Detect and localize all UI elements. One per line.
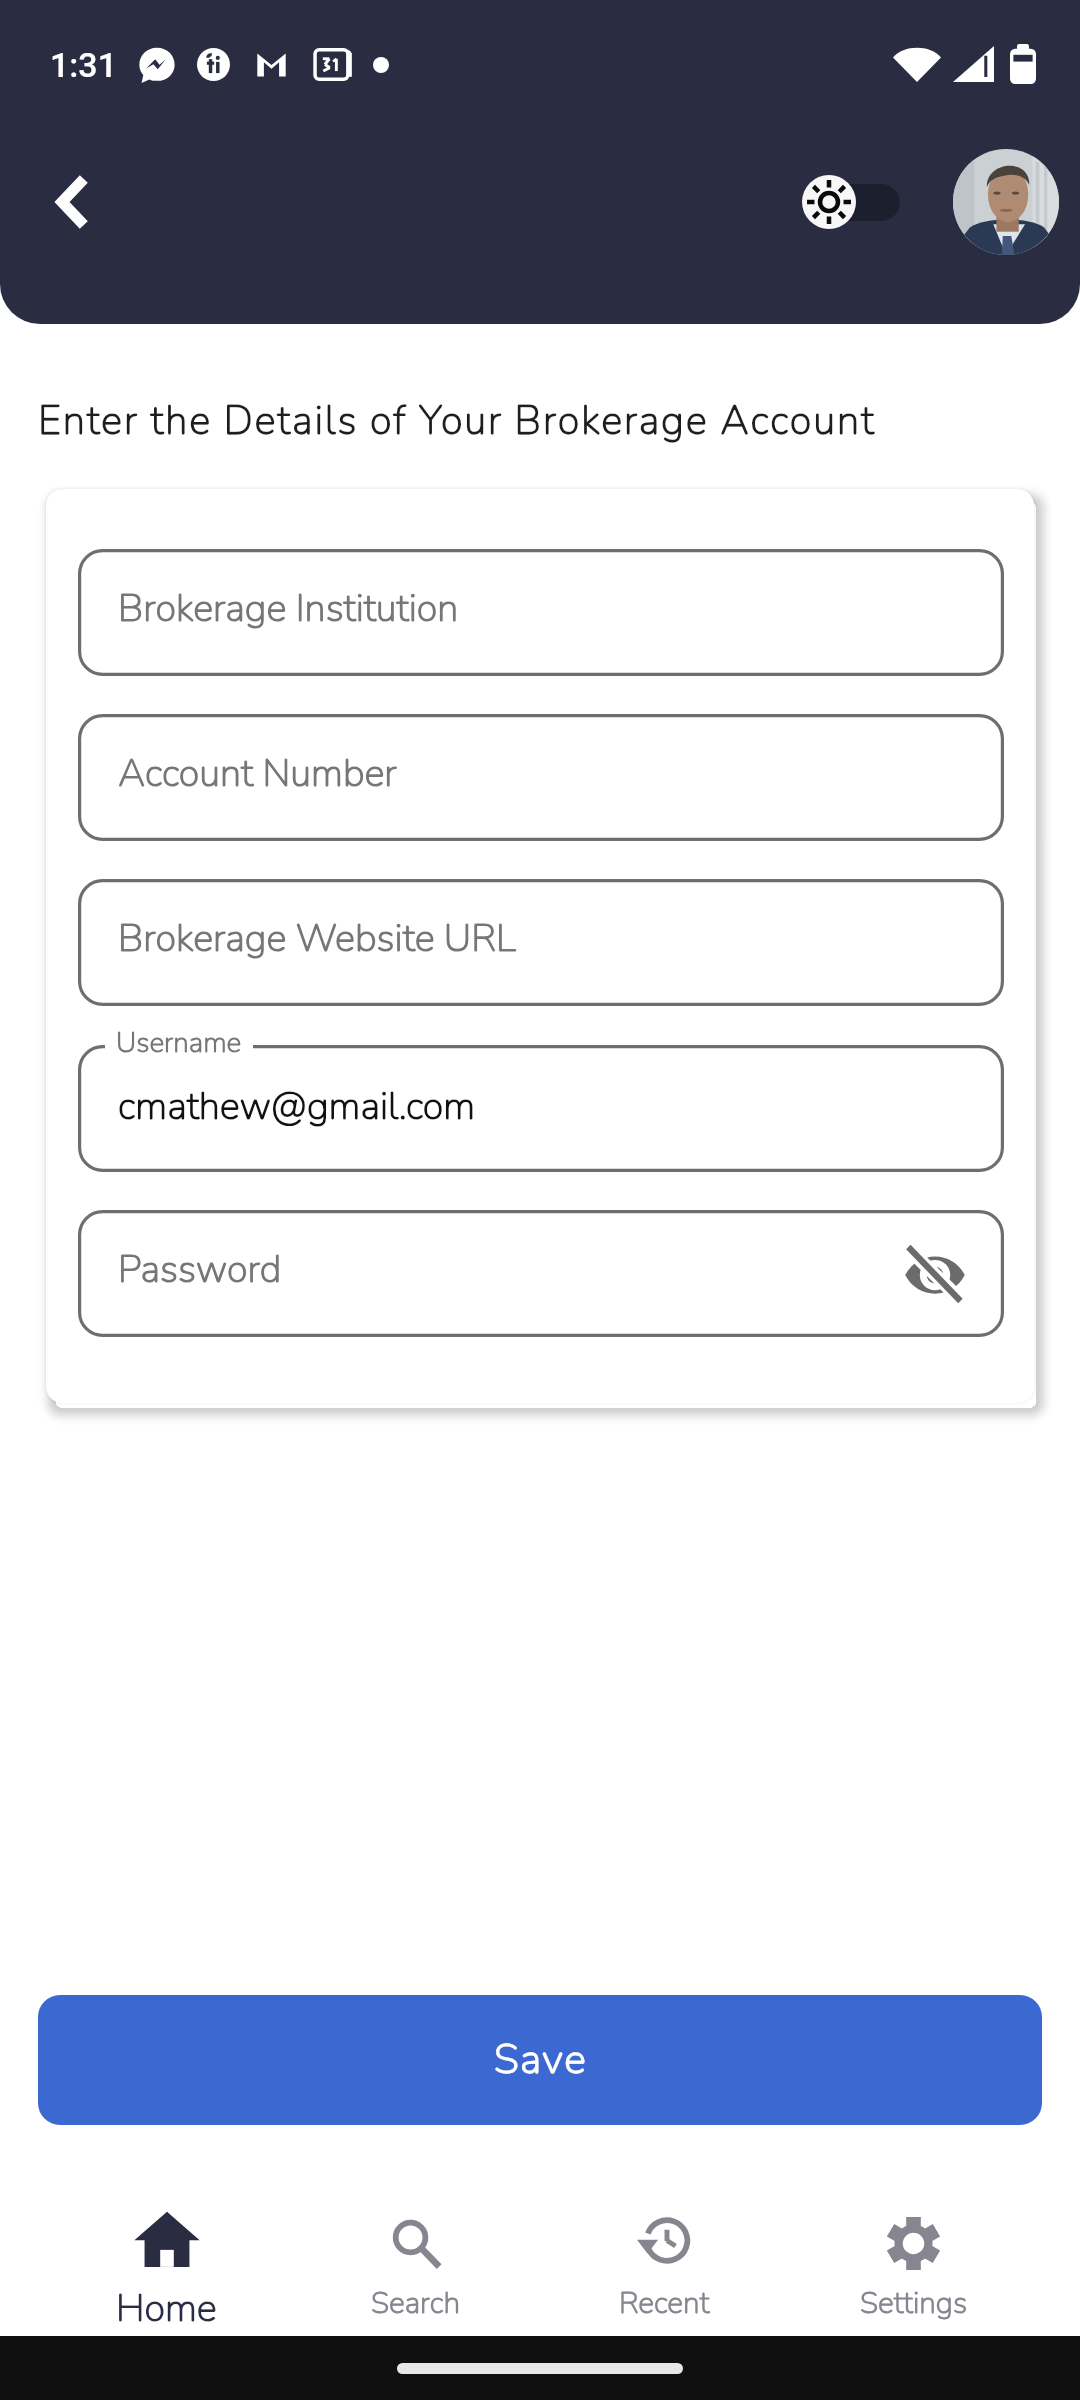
button[interactable]: Username xyxy=(78,1045,1004,1172)
button[interactable]: Settings xyxy=(789,2200,1038,2324)
staticText: 1:31 xyxy=(50,45,117,85)
button[interactable]: Brokerage Institution xyxy=(78,549,1004,676)
button[interactable]: Profile xyxy=(953,149,1059,255)
staticText: cmathew@gmail.com xyxy=(118,1081,476,1133)
staticText: Enter the Details of Your Brokerage Acco… xyxy=(38,394,876,449)
staticText: Brokerage Institution xyxy=(118,583,459,635)
staticText: Recent xyxy=(619,2283,710,2324)
button[interactable]: Account Number xyxy=(78,714,1004,841)
staticText: Brokerage Website URL xyxy=(118,913,517,965)
staticText: Password xyxy=(118,1244,282,1296)
button[interactable]: Back xyxy=(33,164,109,240)
button[interactable]: Search xyxy=(291,2200,540,2324)
button[interactable]: Save xyxy=(38,1995,1042,2125)
button[interactable]: Brokerage Website URL xyxy=(78,879,1004,1006)
staticText: Settings xyxy=(860,2283,968,2324)
staticText: Search xyxy=(371,2283,461,2324)
staticText: Save xyxy=(494,2032,587,2088)
button[interactable]: Password xyxy=(78,1210,1004,1337)
button[interactable]: Toggle light mode xyxy=(802,174,900,230)
staticText: Username xyxy=(116,1024,242,1062)
button[interactable]: Show password xyxy=(902,1241,968,1307)
button[interactable]: Recent xyxy=(540,2200,789,2324)
button[interactable]: Home xyxy=(42,2200,291,2335)
staticText: Home xyxy=(116,2283,217,2335)
staticText: Account Number xyxy=(118,748,397,800)
